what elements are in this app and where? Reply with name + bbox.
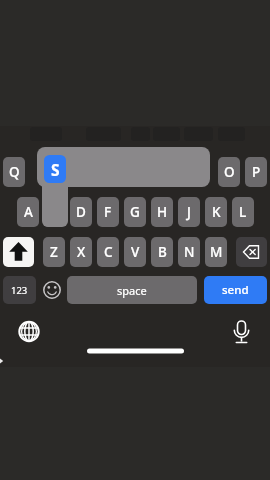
staticText: K bbox=[212, 203, 221, 221]
button[interactable]: A bbox=[17, 197, 39, 227]
button[interactable] bbox=[236, 237, 267, 267]
button[interactable]: D bbox=[70, 197, 92, 227]
button[interactable]: B bbox=[151, 237, 173, 267]
staticText: J bbox=[187, 203, 191, 221]
button[interactable]: P bbox=[245, 157, 267, 187]
button[interactable]: G bbox=[124, 197, 146, 227]
button[interactable]: space bbox=[67, 276, 197, 304]
staticText: P bbox=[252, 163, 261, 181]
button[interactable]: Z bbox=[43, 237, 65, 267]
staticText: C bbox=[104, 243, 113, 261]
staticText: O bbox=[224, 163, 235, 181]
button[interactable]: X bbox=[70, 237, 92, 267]
button[interactable]: send bbox=[204, 276, 267, 304]
button[interactable]: V bbox=[124, 237, 146, 267]
button[interactable]: F bbox=[97, 197, 119, 227]
staticText: D bbox=[76, 203, 86, 221]
staticText: S bbox=[51, 159, 60, 180]
staticText: N bbox=[184, 243, 195, 261]
staticText: M bbox=[210, 243, 223, 261]
staticText: X bbox=[77, 243, 86, 261]
button[interactable]: S bbox=[44, 155, 66, 183]
staticText: 123 bbox=[11, 284, 28, 297]
staticText: Z bbox=[50, 243, 58, 261]
button[interactable]: M bbox=[205, 237, 227, 267]
button[interactable]: H bbox=[151, 197, 173, 227]
button[interactable]: Q bbox=[3, 157, 25, 187]
button[interactable]: K bbox=[205, 197, 227, 227]
button[interactable]: 123 bbox=[3, 276, 36, 304]
staticText: B bbox=[158, 243, 167, 261]
button[interactable] bbox=[3, 237, 34, 267]
staticText: G bbox=[130, 203, 140, 221]
staticText: space bbox=[117, 283, 147, 298]
button[interactable]: O bbox=[218, 157, 240, 187]
staticText: H bbox=[157, 203, 168, 221]
staticText: V bbox=[131, 243, 140, 261]
button[interactable]: C bbox=[97, 237, 119, 267]
button[interactable]: L bbox=[232, 197, 254, 227]
staticText: send bbox=[222, 282, 249, 298]
staticText: F bbox=[104, 203, 112, 221]
button[interactable]: N bbox=[178, 237, 200, 267]
staticText: A bbox=[24, 203, 33, 221]
staticText: L bbox=[239, 203, 247, 221]
button[interactable]: S bbox=[43, 197, 65, 227]
button[interactable]: J bbox=[178, 197, 200, 227]
staticText: Q bbox=[9, 163, 20, 181]
